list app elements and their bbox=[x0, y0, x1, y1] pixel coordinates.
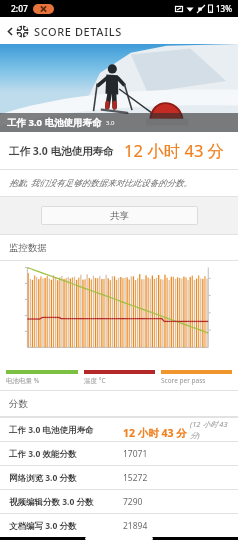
staticText: 15272 bbox=[123, 472, 148, 484]
staticText: 工作 3.0 电池使用寿命 bbox=[9, 144, 114, 158]
staticText: (12 小时 43 分) bbox=[190, 419, 229, 440]
staticText: 17071 bbox=[123, 448, 148, 460]
staticText: 12 小时 43 分 bbox=[123, 426, 187, 440]
staticText: Score per pass bbox=[161, 376, 206, 385]
staticText: 分数 bbox=[9, 398, 28, 410]
staticText: 工作 3.0 电池使用寿命 bbox=[9, 424, 94, 436]
staticText: 网络浏览 3.0 分数 bbox=[9, 472, 77, 484]
button[interactable]: 文档编写 3.0 分数 bbox=[0, 514, 238, 537]
staticText: 电池电量 % bbox=[6, 376, 40, 385]
staticText: 文档编写 3.0 分数 bbox=[9, 520, 77, 532]
staticText: 视频编辑分数 3.0 分数 bbox=[9, 496, 94, 508]
staticText: 3.0 bbox=[106, 119, 115, 127]
staticText: SCORE DETAILS bbox=[34, 24, 122, 39]
button[interactable]: 共享 bbox=[41, 206, 198, 225]
staticText: 工作 3.0 电池使用寿命 bbox=[7, 116, 102, 129]
staticText: 抱歉, 我们没有足够的数据来对比此设备的分数。 bbox=[9, 177, 192, 189]
staticText: 工作 3.0 效能分数 bbox=[9, 448, 77, 460]
button[interactable]: 网络浏览 3.0 分数 bbox=[0, 466, 238, 489]
staticText: 7290 bbox=[123, 496, 143, 508]
staticText: 13% bbox=[216, 3, 232, 14]
staticText: 12 小时 43 分 bbox=[124, 139, 225, 162]
staticText: 监控数据 bbox=[9, 242, 47, 254]
staticText: 共享 bbox=[110, 210, 129, 222]
staticText: 21894 bbox=[123, 520, 148, 532]
button[interactable]: Back bbox=[4, 19, 16, 43]
button[interactable]: 工作 3.0 电池使用寿命 bbox=[0, 418, 238, 441]
staticText: 2:07 bbox=[11, 3, 28, 15]
button[interactable]: 视频编辑分数 3.0 分数 bbox=[0, 490, 238, 513]
button[interactable]: 工作 3.0 效能分数 bbox=[0, 442, 238, 465]
staticText: 温度 °C bbox=[84, 376, 106, 385]
